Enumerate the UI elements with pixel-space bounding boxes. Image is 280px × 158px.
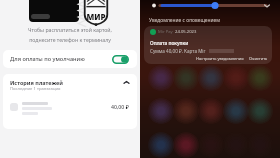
staticText: Mir Pay [158,29,173,35]
staticText: поднесите телефон к терминалу [0,36,140,43]
staticText: 24.05.2023 [175,29,197,35]
staticText: Чтобы расплатиться этой картой, [0,26,140,33]
staticText: Для оплаты по умолчанию [10,55,85,63]
other: Свернуть [123,79,130,86]
button[interactable] [148,0,272,11]
button[interactable]: Очистить [249,56,268,61]
button[interactable]: Развернуть [262,1,272,11]
button[interactable]: Настроить уведомления [196,56,244,61]
staticText: Последние 1 транзакция [10,86,61,92]
staticText: МИР [84,11,108,22]
staticText: Уведомление с оповещением [149,17,221,24]
staticText: История платежей [10,79,63,86]
staticText: Оплата покупки [150,40,189,47]
button[interactable]: Mir Pay [144,26,272,64]
button[interactable]: История платежей [3,74,137,98]
staticText: Сумма 40,00 ₽. Карта Mir [150,48,206,54]
button[interactable]: 40,00 ₽ [3,98,137,122]
staticText: 40,00 ₽ [111,103,129,110]
button[interactable]: Для оплаты по умолчанию [3,50,137,68]
